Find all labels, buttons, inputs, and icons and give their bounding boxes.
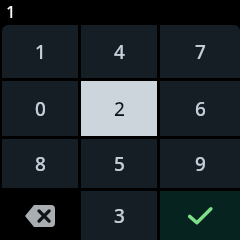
button[interactable]: 2 xyxy=(81,81,157,136)
staticText: 1 xyxy=(6,0,16,23)
staticText: 2 xyxy=(114,96,125,122)
button[interactable]: 3 xyxy=(81,191,157,240)
staticText: 1 xyxy=(35,39,46,65)
button[interactable]: 7 xyxy=(160,25,240,78)
staticText: 3 xyxy=(114,203,125,229)
staticText: 0 xyxy=(35,96,46,122)
button[interactable]: 9 xyxy=(160,139,240,188)
button[interactable]: 8 xyxy=(2,139,78,188)
staticText: 4 xyxy=(114,39,125,65)
staticText: 5 xyxy=(114,151,125,177)
staticText: 8 xyxy=(35,151,46,177)
button[interactable]: 1 xyxy=(2,25,78,78)
button[interactable]: 5 xyxy=(81,139,157,188)
button[interactable]: 4 xyxy=(81,25,157,78)
button[interactable]: Backspace xyxy=(2,191,78,240)
button[interactable]: Confirm xyxy=(160,191,240,240)
staticText: 6 xyxy=(195,96,206,122)
staticText: 9 xyxy=(195,151,206,177)
staticText: 7 xyxy=(195,39,206,65)
button[interactable]: 0 xyxy=(2,81,78,136)
button[interactable]: 6 xyxy=(160,81,240,136)
